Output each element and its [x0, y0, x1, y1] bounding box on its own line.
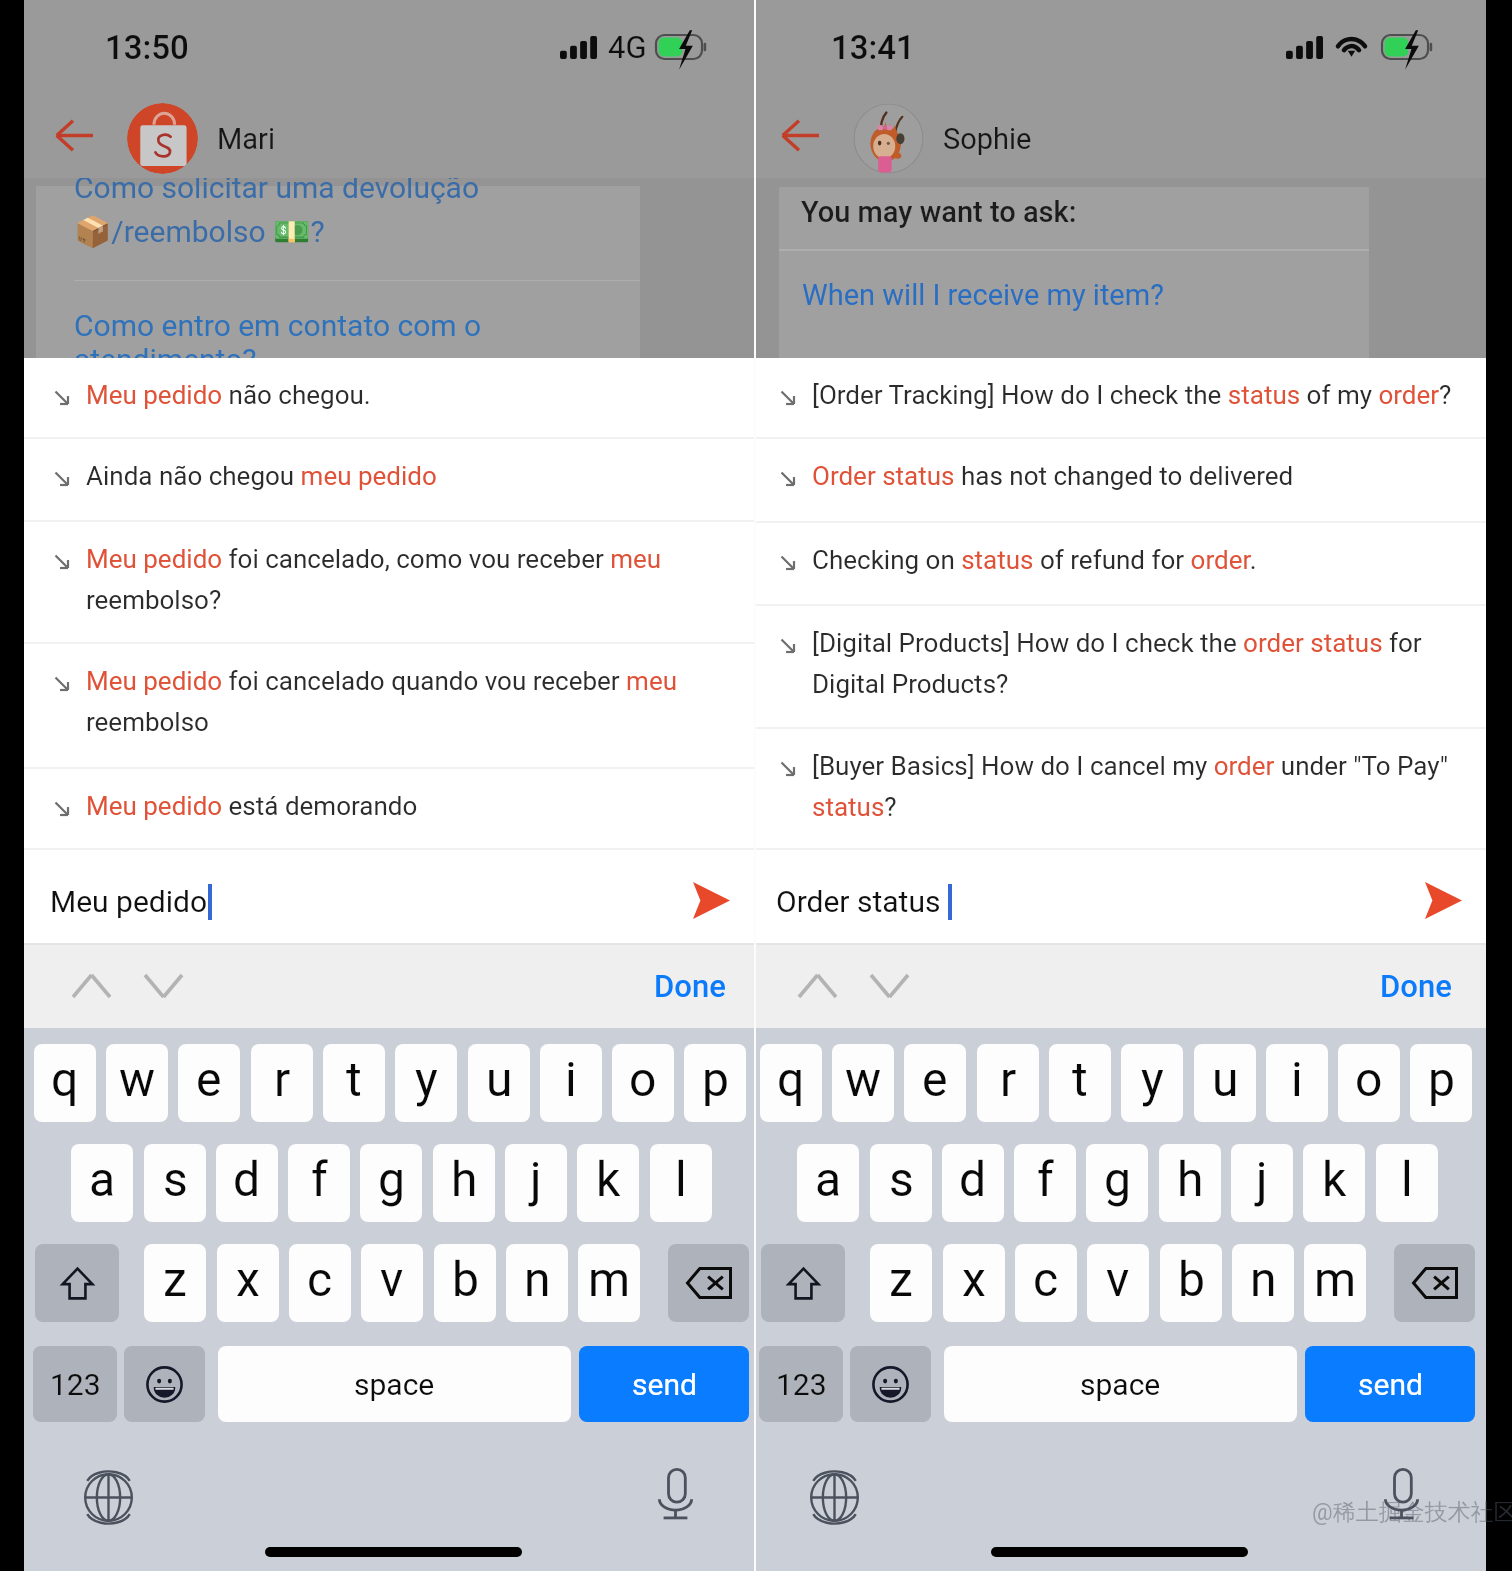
- button[interactable]: t: [1049, 1044, 1111, 1122]
- button[interactable]: b: [1160, 1244, 1222, 1322]
- button[interactable]: v: [1087, 1244, 1149, 1322]
- staticText: f: [1037, 1151, 1054, 1207]
- button[interactable]: Done: [620, 959, 726, 1013]
- button[interactable]: space: [218, 1346, 571, 1422]
- button[interactable]: Done: [1346, 959, 1452, 1013]
- button[interactable]: g: [360, 1144, 422, 1222]
- button[interactable]: w: [106, 1044, 168, 1122]
- button[interactable]: Change keyboard: [810, 1473, 859, 1522]
- button[interactable]: i: [1266, 1044, 1328, 1122]
- button[interactable]: j: [1231, 1144, 1293, 1222]
- staticText: n: [524, 1251, 551, 1307]
- button[interactable]: g: [1086, 1144, 1148, 1222]
- button[interactable]: x: [943, 1244, 1005, 1322]
- button[interactable]: send: [579, 1346, 749, 1422]
- button[interactable]: z: [144, 1244, 206, 1322]
- button[interactable]: Change keyboard: [84, 1473, 133, 1522]
- button[interactable]: Send: [1413, 870, 1473, 930]
- button[interactable]: q: [34, 1044, 96, 1122]
- button[interactable]: s: [144, 1144, 206, 1222]
- button[interactable]: send: [1305, 1346, 1475, 1422]
- button[interactable]: r: [251, 1044, 313, 1122]
- button[interactable]: m: [1304, 1244, 1366, 1322]
- staticText: c: [1033, 1251, 1059, 1307]
- button[interactable]: o: [612, 1044, 674, 1122]
- button[interactable]: Checking on status of refund for order.: [750, 523, 1486, 606]
- button[interactable]: a: [797, 1144, 859, 1222]
- button[interactable]: Meu pedido está demorando: [24, 769, 754, 850]
- button[interactable]: Meu pedido foi cancelado, como vou receb…: [24, 522, 754, 644]
- button[interactable]: Backspace: [1394, 1244, 1475, 1322]
- button[interactable]: x: [217, 1244, 279, 1322]
- button[interactable]: i: [540, 1044, 602, 1122]
- button[interactable]: n: [506, 1244, 568, 1322]
- button[interactable]: e: [178, 1044, 240, 1122]
- button[interactable]: t: [323, 1044, 385, 1122]
- button[interactable]: f: [288, 1144, 350, 1222]
- staticText: t: [346, 1051, 362, 1107]
- button[interactable]: k: [1303, 1144, 1365, 1222]
- button[interactable]: e: [904, 1044, 966, 1122]
- button[interactable]: l: [650, 1144, 712, 1222]
- button[interactable]: Previous field: [60, 960, 122, 1012]
- button[interactable]: [Buyer Basics] How do I cancel my order …: [750, 729, 1486, 850]
- button[interactable]: d: [942, 1144, 1004, 1222]
- button[interactable]: Meu pedido não chegou.: [24, 358, 754, 439]
- button[interactable]: f: [1014, 1144, 1076, 1222]
- button[interactable]: Meu pedido foi cancelado quando vou rece…: [24, 644, 754, 769]
- button[interactable]: u: [468, 1044, 530, 1122]
- button[interactable]: z: [870, 1244, 932, 1322]
- button[interactable]: Next field: [132, 960, 194, 1012]
- button[interactable]: y: [1121, 1044, 1183, 1122]
- button[interactable]: w: [832, 1044, 894, 1122]
- button[interactable]: c: [289, 1244, 351, 1322]
- button[interactable]: u: [1194, 1044, 1256, 1122]
- button[interactable]: Ainda não chegou meu pedido: [24, 439, 754, 522]
- button[interactable]: Previous field: [786, 960, 848, 1012]
- button[interactable]: Emoji: [850, 1346, 931, 1422]
- button[interactable]: Back: [766, 110, 834, 160]
- button[interactable]: n: [1232, 1244, 1294, 1322]
- staticText: s: [163, 1151, 188, 1207]
- button[interactable]: Backspace: [668, 1244, 749, 1322]
- button[interactable]: s: [870, 1144, 932, 1222]
- button[interactable]: 123: [33, 1346, 117, 1422]
- button[interactable]: k: [577, 1144, 639, 1222]
- staticText: 123: [50, 1367, 101, 1402]
- button[interactable]: Shift: [761, 1244, 845, 1322]
- button[interactable]: o: [1338, 1044, 1400, 1122]
- staticText: Mari: [217, 122, 275, 156]
- button[interactable]: v: [361, 1244, 423, 1322]
- button[interactable]: Dictate: [658, 1468, 693, 1520]
- button[interactable]: space: [944, 1346, 1297, 1422]
- button[interactable]: Shift: [35, 1244, 119, 1322]
- button[interactable]: Order status has not changed to delivere…: [750, 439, 1486, 523]
- staticText: o: [1355, 1051, 1383, 1107]
- button[interactable]: 123: [759, 1346, 843, 1422]
- button[interactable]: [Digital Products] How do I check the or…: [750, 606, 1486, 729]
- button[interactable]: q: [760, 1044, 822, 1122]
- button[interactable]: j: [505, 1144, 567, 1222]
- button[interactable]: [Order Tracking] How do I check the stat…: [750, 358, 1486, 439]
- button[interactable]: c: [1015, 1244, 1077, 1322]
- staticText: [Buyer Basics] How do I cancel my order …: [812, 751, 1474, 823]
- button[interactable]: Emoji: [124, 1346, 205, 1422]
- staticText: z: [163, 1251, 187, 1307]
- button[interactable]: b: [434, 1244, 496, 1322]
- button[interactable]: h: [1159, 1144, 1221, 1222]
- button[interactable]: Send: [681, 870, 741, 930]
- button[interactable]: y: [395, 1044, 457, 1122]
- button[interactable]: d: [216, 1144, 278, 1222]
- button[interactable]: r: [977, 1044, 1039, 1122]
- staticText: t: [1072, 1051, 1088, 1107]
- button[interactable]: Back: [40, 110, 108, 160]
- staticText: a: [815, 1151, 842, 1207]
- button[interactable]: Next field: [858, 960, 920, 1012]
- button[interactable]: p: [684, 1044, 746, 1122]
- button[interactable]: m: [578, 1244, 640, 1322]
- button[interactable]: h: [433, 1144, 495, 1222]
- button[interactable]: p: [1410, 1044, 1472, 1122]
- button[interactable]: a: [71, 1144, 133, 1222]
- button[interactable]: l: [1376, 1144, 1438, 1222]
- button[interactable]: Dictate: [1384, 1468, 1419, 1520]
